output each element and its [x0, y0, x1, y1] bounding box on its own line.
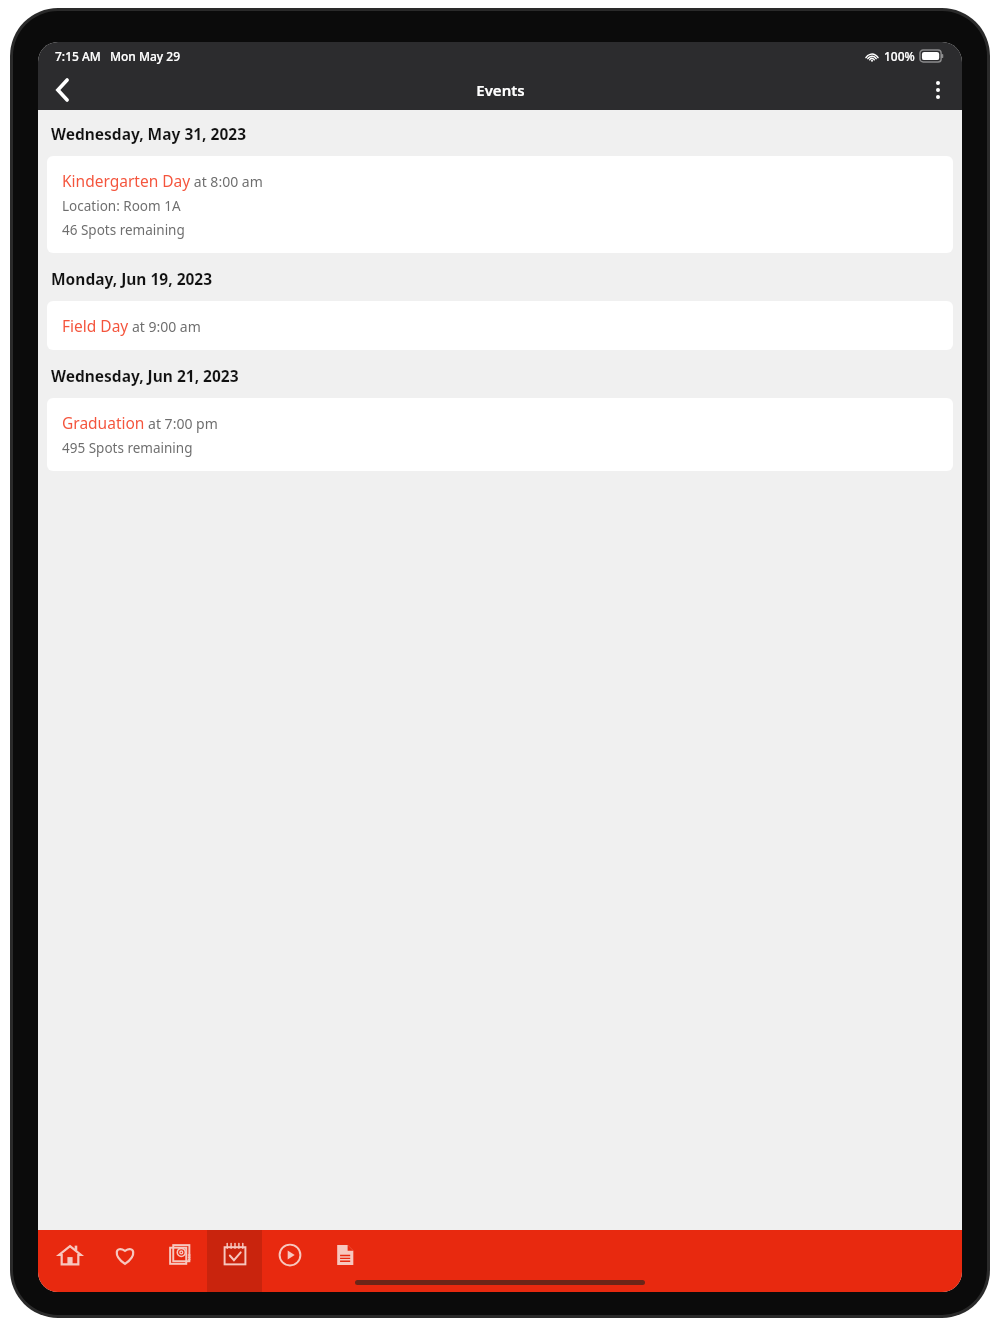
button[interactable]: Media	[262, 1230, 317, 1292]
staticText: Wednesday, Jun 21, 2023	[51, 365, 239, 386]
button[interactable]: Home	[42, 1230, 97, 1292]
button[interactable]: More options	[914, 70, 962, 110]
staticText: 7:15 AM	[55, 48, 101, 64]
staticText: Location: Room 1A	[62, 197, 181, 215]
button[interactable]: Favorites	[97, 1230, 152, 1292]
staticText: Events	[476, 80, 525, 100]
staticText: 495 Spots remaining	[62, 439, 193, 457]
staticText: Mon May 29	[110, 48, 181, 64]
button[interactable]: Directory	[152, 1230, 207, 1292]
staticText: 100%	[884, 48, 915, 64]
staticText: Kindergarten Day at 8:00 am	[62, 170, 263, 191]
button[interactable]: Events	[207, 1230, 262, 1292]
staticText: Graduation at 7:00 pm	[62, 412, 218, 433]
staticText: Field Day at 9:00 am	[62, 315, 201, 336]
staticText: Wednesday, May 31, 2023	[51, 123, 247, 144]
button[interactable]: Graduation at 7:00 pm	[47, 398, 953, 471]
button[interactable]: Field Day at 9:00 am	[47, 301, 953, 350]
button[interactable]: Documents	[317, 1230, 372, 1292]
button[interactable]: Back	[38, 70, 86, 110]
staticText: Monday, Jun 19, 2023	[51, 268, 213, 289]
staticText: 46 Spots remaining	[62, 221, 185, 239]
button[interactable]: Kindergarten Day at 8:00 am	[47, 156, 953, 253]
